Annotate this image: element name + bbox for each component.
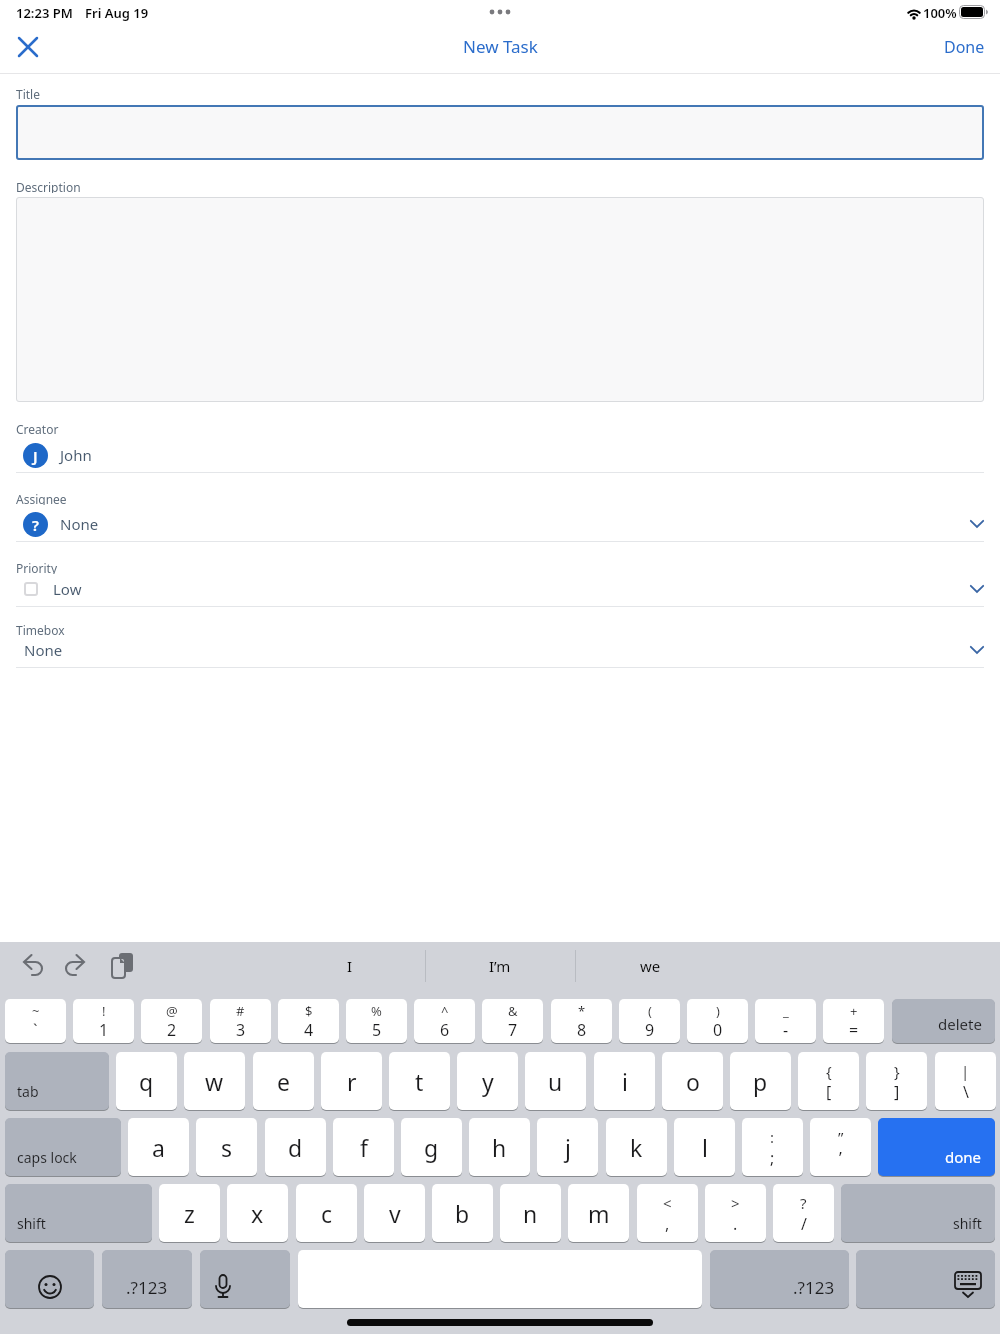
button[interactable]: b (432, 1184, 493, 1242)
staticText: delete (938, 1014, 982, 1034)
staticText: 4 (304, 1019, 314, 1041)
staticText: J (33, 446, 38, 466)
button[interactable]: { (798, 1052, 859, 1110)
staticText: v (389, 1198, 401, 1229)
staticText: u (548, 1066, 563, 1097)
staticText: ! (102, 1002, 106, 1020)
button[interactable]: $ (278, 999, 339, 1043)
button[interactable]: i (594, 1052, 655, 1110)
staticText: Timebox (16, 622, 65, 636)
button[interactable]: * (551, 999, 612, 1043)
staticText: 5 (372, 1019, 382, 1041)
button[interactable]: x (227, 1184, 288, 1242)
button[interactable] (16, 197, 984, 402)
button[interactable]: e (253, 1052, 314, 1110)
button[interactable]: z (159, 1184, 220, 1242)
button[interactable]: j (537, 1118, 598, 1176)
staticText: Low (53, 579, 82, 599)
button[interactable]: h (469, 1118, 530, 1176)
staticText: ] (894, 1081, 900, 1103)
button[interactable]: v (364, 1184, 425, 1242)
button[interactable] (16, 105, 984, 160)
button[interactable]: g (401, 1118, 462, 1176)
button[interactable]: tab (5, 1052, 109, 1110)
button[interactable]: we (575, 951, 725, 981)
button[interactable]: ! (73, 999, 134, 1043)
staticText: Fri Aug 19 (85, 4, 149, 22)
button[interactable]: .?123 (710, 1250, 849, 1308)
button[interactable]: J (16, 438, 984, 472)
button[interactable]: caps lock (5, 1118, 121, 1176)
button[interactable]: s (196, 1118, 257, 1176)
button[interactable]: d (265, 1118, 326, 1176)
staticText: ^ (441, 1002, 449, 1020)
button[interactable]: | (935, 1052, 996, 1110)
staticText: % (371, 1002, 382, 1020)
staticText: n (523, 1198, 538, 1229)
button[interactable] (22, 954, 46, 978)
button[interactable] (200, 1250, 290, 1308)
button[interactable]: delete (892, 999, 995, 1043)
button[interactable]: I’m (425, 951, 575, 981)
staticText: : (770, 1127, 775, 1147)
button[interactable] (64, 954, 88, 978)
button[interactable]: # (210, 999, 271, 1043)
button[interactable]: ^ (414, 999, 475, 1043)
button[interactable]: ? (16, 508, 984, 540)
staticText: 2 (167, 1019, 177, 1041)
button[interactable]: } (866, 1052, 927, 1110)
staticText: b (455, 1198, 470, 1229)
staticText: j (565, 1132, 571, 1163)
button[interactable]: k (606, 1118, 667, 1176)
staticText: None (60, 514, 99, 534)
button[interactable]: Low (16, 576, 984, 602)
button[interactable]: ~ (5, 999, 66, 1043)
button[interactable]: _ (755, 999, 816, 1043)
staticText: 7 (508, 1019, 518, 1041)
button[interactable] (110, 953, 136, 979)
button[interactable]: shift (841, 1184, 995, 1242)
button[interactable]: o (662, 1052, 723, 1110)
button[interactable] (14, 34, 42, 60)
button[interactable]: None (16, 639, 984, 661)
button[interactable]: ? (773, 1184, 834, 1242)
staticText: s (221, 1132, 233, 1163)
button[interactable]: y (457, 1052, 518, 1110)
button[interactable]: ” (810, 1118, 871, 1176)
button[interactable]: a (128, 1118, 189, 1176)
staticText: f (360, 1132, 368, 1163)
button[interactable]: done (878, 1118, 995, 1176)
button[interactable]: Done (835, 33, 985, 60)
button[interactable]: < (637, 1184, 698, 1242)
button[interactable]: & (482, 999, 543, 1043)
button[interactable]: % (346, 999, 407, 1043)
button[interactable] (856, 1250, 995, 1308)
button[interactable]: n (500, 1184, 561, 1242)
staticText: { (826, 1061, 832, 1081)
button[interactable]: .?123 (102, 1250, 192, 1308)
button[interactable]: t (389, 1052, 450, 1110)
staticText: caps lock (17, 1148, 77, 1167)
button[interactable]: f (333, 1118, 394, 1176)
button[interactable]: c (296, 1184, 357, 1242)
button[interactable]: ) (687, 999, 748, 1043)
button[interactable]: : (742, 1118, 803, 1176)
button[interactable]: u (525, 1052, 586, 1110)
button[interactable]: + (823, 999, 884, 1043)
button[interactable]: l (674, 1118, 735, 1176)
button[interactable]: q (116, 1052, 177, 1110)
staticText: } (894, 1061, 900, 1081)
button[interactable]: p (730, 1052, 791, 1110)
button[interactable]: m (568, 1184, 629, 1242)
button[interactable]: I (275, 951, 425, 981)
staticText: 6 (440, 1019, 450, 1041)
button[interactable]: ( (619, 999, 680, 1043)
button[interactable]: w (184, 1052, 245, 1110)
button[interactable] (5, 1250, 94, 1308)
staticText: d (288, 1132, 303, 1163)
button[interactable]: r (321, 1052, 382, 1110)
button[interactable]: shift (5, 1184, 152, 1242)
button[interactable]: @ (141, 999, 202, 1043)
button[interactable]: > (705, 1184, 766, 1242)
